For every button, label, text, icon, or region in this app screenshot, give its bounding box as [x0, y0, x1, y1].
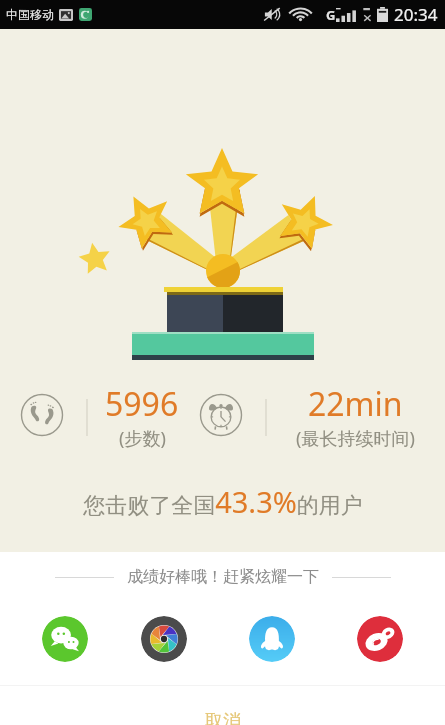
staticText: 20:34: [394, 3, 438, 26]
button[interactable]: Weibo: [357, 616, 403, 662]
staticText: 成绩好棒哦！赶紧炫耀一下: [127, 567, 319, 587]
button[interactable]: Moments: [141, 616, 187, 662]
staticText: (步数): [119, 426, 166, 451]
staticText: G: [326, 6, 336, 24]
staticText: 中国移动: [6, 7, 54, 22]
staticText: (最长持续时间): [296, 426, 415, 451]
button[interactable]: 取消: [0, 686, 445, 725]
staticText: 5996: [105, 382, 179, 426]
staticText: 您击败了全国43.3%的用户: [83, 482, 363, 521]
button[interactable]: WeChat: [42, 616, 88, 662]
button[interactable]: QQ: [249, 616, 295, 662]
staticText: 22min: [308, 382, 403, 426]
staticText: 取消: [205, 710, 241, 725]
